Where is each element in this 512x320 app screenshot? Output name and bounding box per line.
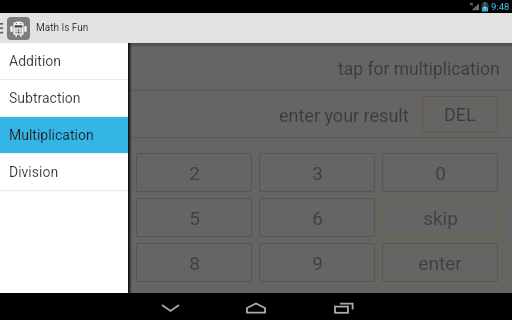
button[interactable]: Open navigation drawer <box>0 13 6 43</box>
button[interactable]: 7 <box>14 243 129 282</box>
staticText: 3 <box>312 162 323 184</box>
button[interactable]: 1 <box>14 153 129 192</box>
button[interactable]: Home <box>213 293 298 320</box>
button[interactable]: 5 <box>136 198 252 237</box>
staticText: skip <box>423 207 458 229</box>
button[interactable]: 2 <box>136 153 252 192</box>
button[interactable]: tap for multiplication <box>0 47 512 90</box>
staticText: DEL <box>444 104 476 125</box>
staticText: 6 <box>312 207 323 229</box>
button[interactable]: 8 <box>136 243 252 282</box>
button[interactable]: Division <box>0 154 128 190</box>
staticText: 8 <box>189 252 200 274</box>
button[interactable]: Back <box>128 293 213 320</box>
staticText: Subtraction <box>9 90 81 106</box>
button[interactable]: DEL <box>422 96 498 133</box>
button[interactable]: enter <box>382 243 498 282</box>
staticText: 2 <box>189 162 200 184</box>
staticText: tap for multiplication <box>338 59 500 80</box>
button[interactable]: skip <box>382 198 498 237</box>
button[interactable]: Addition <box>0 43 128 79</box>
button[interactable]: Recent apps <box>298 293 383 320</box>
button[interactable]: 3 <box>259 153 375 192</box>
staticText: 9 <box>312 252 323 274</box>
staticText: Division <box>9 164 59 180</box>
button[interactable]: 4 <box>14 198 129 237</box>
button[interactable]: 0 <box>382 153 498 192</box>
staticText: Multiplication <box>9 127 94 143</box>
staticText: Addition <box>9 53 62 69</box>
button[interactable]: 9 <box>259 243 375 282</box>
staticText: 0 <box>435 162 446 184</box>
button[interactable]: 6 <box>259 198 375 237</box>
staticText: 5 <box>189 207 200 229</box>
staticText: 9:48 <box>491 1 510 12</box>
button[interactable]: Subtraction <box>0 80 128 116</box>
staticText: Math Is Fun <box>36 22 89 34</box>
staticText: enter <box>418 252 462 274</box>
staticText: enter your result <box>279 105 409 126</box>
button[interactable]: Multiplication <box>0 117 128 153</box>
